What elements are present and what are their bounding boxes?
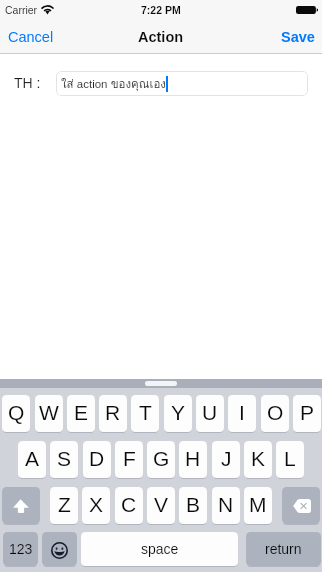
button[interactable]: return	[246, 532, 321, 566]
button[interactable]: space	[81, 532, 238, 566]
button[interactable]: Y	[164, 395, 192, 432]
staticText: O	[267, 401, 284, 424]
button[interactable]: Z	[50, 487, 78, 524]
button[interactable]: N	[212, 487, 240, 524]
staticText: space	[141, 541, 179, 557]
staticText: N	[218, 493, 234, 516]
staticText: Carrier	[5, 4, 38, 16]
button[interactable]: K	[244, 441, 272, 478]
staticText: R	[105, 401, 121, 424]
button[interactable]: V	[147, 487, 175, 524]
staticText: 123	[9, 541, 33, 557]
staticText: W	[39, 401, 59, 424]
staticText: G	[153, 447, 170, 470]
staticText: Cancel	[8, 29, 54, 45]
button[interactable]: Q	[2, 395, 30, 432]
staticText: P	[300, 401, 315, 424]
staticText: C	[121, 493, 137, 516]
button[interactable]: O	[261, 395, 289, 432]
button[interactable]: 123	[3, 532, 38, 566]
staticText: ใส่ action ของคุณเอง	[61, 75, 166, 93]
button[interactable]: D	[83, 441, 111, 478]
button[interactable]: A	[18, 441, 46, 478]
staticText: T	[139, 401, 152, 424]
button[interactable]: G	[147, 441, 175, 478]
staticText: 7:22 PM	[141, 4, 181, 16]
staticText: V	[154, 493, 169, 516]
button[interactable]: Save	[274, 23, 322, 51]
button[interactable]: X	[82, 487, 110, 524]
button[interactable]: T	[131, 395, 159, 432]
button[interactable]: L	[276, 441, 304, 478]
button[interactable]: F	[115, 441, 143, 478]
staticText: M	[249, 493, 267, 516]
button[interactable]: R	[99, 395, 127, 432]
staticText: H	[185, 447, 201, 470]
button[interactable]: E	[67, 395, 95, 432]
staticText: Y	[171, 401, 186, 424]
button[interactable]: Emoji keyboard	[42, 532, 77, 566]
staticText: L	[284, 447, 296, 470]
button[interactable]: S	[50, 441, 78, 478]
staticText: S	[57, 447, 72, 470]
staticText: Save	[281, 29, 315, 45]
staticText: D	[89, 447, 105, 470]
button[interactable]: Shift	[2, 487, 40, 524]
button[interactable]: B	[179, 487, 207, 524]
button[interactable]: Cancel	[0, 23, 62, 51]
staticText: Action	[138, 29, 184, 45]
staticText: TH :	[14, 75, 41, 91]
staticText: K	[251, 447, 266, 470]
staticText: Q	[8, 401, 25, 424]
staticText: F	[123, 447, 136, 470]
staticText: B	[186, 493, 201, 516]
button[interactable]: U	[196, 395, 224, 432]
button[interactable]: H	[179, 441, 207, 478]
button[interactable]: ใส่ action ของคุณเอง	[56, 71, 308, 96]
button[interactable]: M	[244, 487, 272, 524]
staticText: E	[74, 401, 89, 424]
staticText: Z	[58, 493, 71, 516]
staticText: I	[239, 401, 245, 424]
button[interactable]: C	[115, 487, 143, 524]
staticText: return	[265, 541, 302, 557]
staticText: U	[202, 401, 218, 424]
button[interactable]: Backspace	[282, 487, 320, 524]
button[interactable]: P	[293, 395, 321, 432]
button[interactable]: I	[228, 395, 256, 432]
button[interactable]: J	[212, 441, 240, 478]
staticText: A	[25, 447, 40, 470]
staticText: X	[89, 493, 104, 516]
button[interactable]: W	[35, 395, 63, 432]
staticText: J	[221, 447, 232, 470]
